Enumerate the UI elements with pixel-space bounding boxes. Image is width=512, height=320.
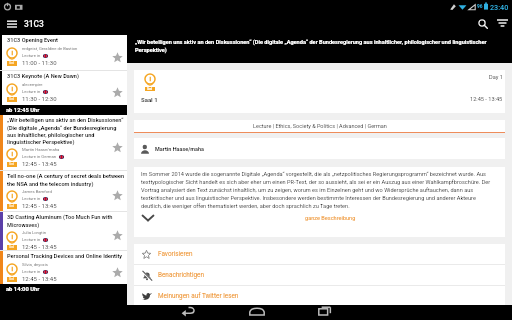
- button[interactable]: Filter: [491, 13, 512, 35]
- staticText: 31C3: [24, 19, 44, 29]
- button[interactable]: Back: [155, 305, 222, 317]
- staticText: Day 1: [489, 74, 503, 81]
- staticText: Lecture in: [22, 89, 41, 94]
- button[interactable]: Favorite: [107, 81, 127, 103]
- staticText: Saal: [9, 163, 15, 166]
- button[interactable]: Meinungen auf Twitter lesen: [134, 286, 505, 305]
- staticText: ab 12:45 Uhr: [6, 107, 40, 114]
- button[interactable]: Favorite: [107, 136, 127, 158]
- button[interactable]: Home: [223, 305, 290, 317]
- staticText: Silvia, deyoxis: [22, 262, 48, 267]
- button[interactable]: Favorite: [107, 224, 127, 246]
- button[interactable]: Favorite: [107, 261, 127, 283]
- staticText: Martin Haase/maha: [22, 147, 60, 152]
- staticText: 3D Casting Aluminum (Too Much Fun with M…: [7, 214, 126, 228]
- staticText: Saal: [147, 88, 153, 91]
- staticText: Lecture in: [22, 196, 41, 201]
- staticText: Personal Tracking Devices and Online Ide…: [7, 253, 123, 260]
- button[interactable]: Benachrichtigen: [134, 265, 505, 285]
- staticText: Saal: [9, 98, 15, 101]
- staticText: 11:00 - 11:30: [22, 59, 57, 66]
- staticText: Saal: [9, 246, 15, 249]
- staticText: 12:45 - 13:45: [470, 96, 503, 103]
- button[interactable]: Tell no-one (A century of secret deals b…: [0, 171, 127, 211]
- staticText: alecempire: [22, 82, 43, 87]
- button[interactable]: Favorite: [107, 184, 127, 206]
- staticText: 12:45 - 13:45: [22, 275, 57, 282]
- staticText: Saal: [9, 62, 15, 65]
- staticText: 31C3 Opening Event: [7, 37, 58, 44]
- staticText: Benachrichtigen: [158, 271, 204, 279]
- staticText: 23:40: [490, 3, 509, 11]
- button[interactable]: Martin Haase/maha: [134, 138, 505, 159]
- button[interactable]: Personal Tracking Devices and Online Ide…: [0, 251, 127, 284]
- staticText: Lecture in: [22, 269, 41, 274]
- button[interactable]: 3D Casting Aluminum (Too Much Fun with M…: [0, 212, 127, 250]
- staticText: Lecture in: [22, 237, 41, 242]
- staticText: Meinungen auf Twitter lesen: [158, 292, 239, 300]
- staticText: Lecture | Ethics, Society & Politics | A…: [253, 123, 387, 129]
- button[interactable]: Favorite: [107, 46, 127, 68]
- staticText: ganze Beschreibung: [305, 215, 356, 222]
- button[interactable]: Menu: [0, 13, 24, 35]
- staticText: 12:45 - 13:45: [22, 202, 57, 209]
- staticText: Martin Haase/maha: [155, 146, 205, 152]
- staticText: 12:45 - 13:45: [22, 243, 57, 250]
- staticText: 96: [477, 4, 483, 10]
- button[interactable]: Recents: [291, 305, 358, 317]
- staticText: ab 14:00 Uhr: [6, 286, 40, 293]
- staticText: Lecture in German: [22, 154, 57, 159]
- staticText: 12:45 - 13:45: [22, 160, 57, 167]
- staticText: „Wir beteiligen uns aktiv an den Diskuss…: [7, 117, 126, 145]
- button[interactable]: Favorisieren: [134, 244, 505, 264]
- button[interactable]: 31C3 Opening Event: [0, 35, 127, 70]
- button[interactable]: Search: [471, 13, 495, 35]
- staticText: Saal: [9, 205, 15, 208]
- staticText: 31C3 Keynote (A New Dawn): [7, 73, 79, 80]
- staticText: erdgeist, Geraldine de Bastion: [22, 46, 78, 51]
- staticText: Lecture in: [22, 53, 41, 58]
- staticText: Favorisieren: [158, 250, 193, 258]
- button[interactable]: „Wir beteiligen uns aktiv an den Diskuss…: [0, 115, 127, 170]
- staticText: Tell no-one (A century of secret deals b…: [7, 173, 126, 187]
- staticText: James Bamford: [22, 189, 52, 194]
- staticText: Im Sommer 2014 wurde die sogenannte Digi…: [141, 171, 495, 209]
- staticText: Julia Longtin: [22, 230, 46, 235]
- staticText: 11:30 - 12:30: [22, 95, 57, 102]
- staticText: Saal: [9, 278, 15, 281]
- staticText: „Wir beteiligen uns aktiv an den Diskuss…: [135, 39, 492, 53]
- button[interactable]: 31C3 Keynote (A New Dawn): [0, 71, 127, 105]
- staticText: Saal 1: [141, 96, 158, 103]
